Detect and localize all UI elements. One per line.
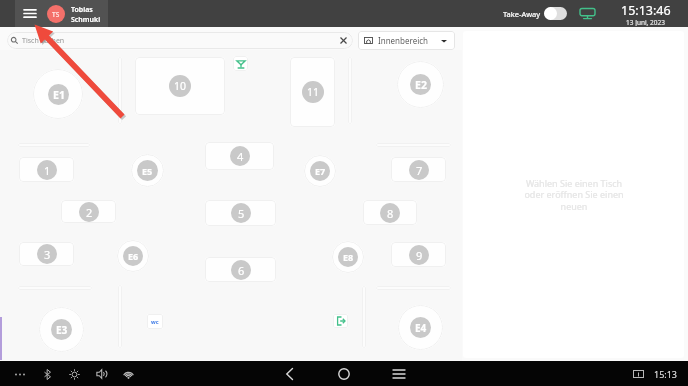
- button[interactable]: Menu: [18, 4, 41, 23]
- button[interactable]: Tisch 4: [205, 142, 274, 170]
- staticText: E6: [128, 250, 139, 262]
- button[interactable]: Tisch 5: [205, 200, 276, 226]
- button[interactable]: Tisch 8: [363, 200, 417, 225]
- button[interactable]: Tisch 1: [19, 157, 74, 182]
- button[interactable]: Tisch E6: [117, 240, 149, 272]
- button[interactable]: Bluetooth: [40, 367, 54, 381]
- staticText: 7: [416, 163, 423, 178]
- staticText: 3: [44, 247, 51, 262]
- button[interactable]: Tisch E3: [39, 307, 84, 352]
- staticText: 2: [86, 205, 93, 220]
- button[interactable]: Tisch 3: [19, 242, 74, 266]
- button[interactable]: Kundendisplay: [577, 4, 597, 22]
- button[interactable]: Übersicht: [386, 361, 412, 386]
- staticText: 6: [238, 263, 245, 278]
- staticText: 9: [416, 248, 423, 263]
- button[interactable]: Tisch 2: [61, 200, 116, 223]
- button[interactable]: Tisch E7: [304, 155, 336, 187]
- button[interactable]: WC: [147, 314, 163, 329]
- button[interactable]: Helligkeit: [67, 367, 81, 381]
- staticText: 5: [238, 206, 245, 221]
- staticText: E5: [142, 165, 153, 177]
- button[interactable]: Tisch E4: [398, 305, 443, 350]
- button[interactable]: Tisch suchen: [7, 32, 353, 49]
- staticText: E8: [343, 251, 354, 263]
- button[interactable]: Tisch E2: [397, 61, 444, 108]
- button[interactable]: Tisch 7: [391, 157, 446, 182]
- staticText: Take-Away: [503, 9, 541, 19]
- staticText: TS: [52, 10, 60, 19]
- button[interactable]: Bar: [233, 56, 248, 71]
- button[interactable]: Tisch 6: [205, 257, 276, 282]
- button[interactable]: Tisch E8: [332, 241, 364, 273]
- staticText: E3: [56, 323, 68, 337]
- button[interactable]: Innenbereich: [358, 31, 455, 50]
- staticText: E7: [315, 165, 326, 177]
- staticText: Tobias: [71, 5, 93, 15]
- button[interactable]: Mehr: [13, 367, 27, 381]
- button[interactable]: WLAN: [121, 367, 135, 381]
- staticText: E4: [415, 321, 427, 335]
- button[interactable]: Tisch 11: [290, 57, 335, 127]
- staticText: Wählen Sie einen Tisch oder eröffnen Sie…: [524, 177, 624, 213]
- button[interactable]: Startbildschirm: [331, 361, 357, 386]
- staticText: Innenbereich: [378, 35, 428, 46]
- button[interactable]: Tisch E5: [131, 154, 164, 187]
- button[interactable]: Take-Away Schalter: [544, 7, 567, 20]
- button[interactable]: Ausgang: [333, 314, 348, 328]
- staticText: wc: [151, 318, 159, 325]
- button[interactable]: Tisch E1: [33, 69, 83, 119]
- button[interactable]: TS: [47, 5, 65, 23]
- staticText: 15:13: [654, 368, 678, 380]
- staticText: 13 Juni, 2023: [626, 18, 665, 26]
- staticText: 4: [237, 149, 244, 164]
- button[interactable]: Lautstärke: [94, 367, 108, 381]
- staticText: E2: [415, 78, 427, 92]
- staticText: 15:13:46: [621, 2, 671, 15]
- staticText: Schmuki: [71, 15, 101, 25]
- button[interactable]: Tisch 9: [391, 242, 446, 267]
- staticText: 1: [44, 163, 51, 178]
- button[interactable]: Fenster: [631, 367, 645, 381]
- staticText: 8: [387, 206, 394, 221]
- staticText: E1: [53, 88, 65, 102]
- staticText: 11: [307, 85, 320, 99]
- staticText: 10: [174, 79, 187, 93]
- button[interactable]: Zurück: [276, 361, 302, 386]
- staticText: Tisch suchen: [22, 36, 65, 46]
- button[interactable]: Tisch 10: [135, 57, 225, 115]
